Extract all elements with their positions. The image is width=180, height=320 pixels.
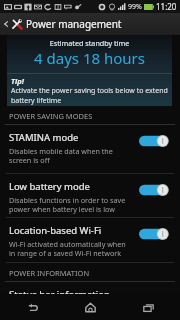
staticText: STAMINA mode: [9, 131, 79, 144]
staticText: Status bar information: [9, 288, 110, 301]
other: Navigate up: [2, 20, 10, 28]
staticText: Low battery mode: [9, 180, 90, 193]
button[interactable]: Toggle on: [139, 135, 169, 147]
staticText: Disables mobile data when the screen is …: [9, 146, 113, 165]
button[interactable]: Navigate up: [0, 13, 180, 35]
staticText: Wi-Fi activated automatically when in ra…: [9, 239, 126, 258]
button[interactable]: Location-based Wi-Fi: [0, 218, 180, 263]
button[interactable]: Toggle on: [139, 228, 169, 240]
staticText: Estimated standby time: [7, 38, 172, 48]
staticText: Power management: [26, 17, 122, 31]
button[interactable]: Toggle on: [139, 184, 169, 196]
button[interactable]: Back: [6, 294, 58, 320]
button[interactable]: STAMINA mode: [0, 125, 180, 174]
staticText: Activate the power saving tools below to…: [11, 86, 168, 96]
staticText: POWER SAVING MODES: [9, 111, 93, 121]
staticText: Tip!: [11, 76, 24, 86]
staticText: Location-based Wi-Fi: [9, 224, 102, 237]
staticText: 99%: [128, 2, 142, 12]
staticText: Disables functions in order to save powe…: [9, 195, 126, 214]
staticText: battery lifetime: [11, 96, 62, 106]
staticText: 4 days 18 hours: [7, 48, 172, 68]
staticText: 11:20: [156, 1, 177, 12]
button[interactable]: Recent apps: [122, 294, 174, 320]
button[interactable]: Home: [64, 294, 116, 320]
button[interactable]: Status bar information: [0, 282, 180, 310]
button[interactable]: Low battery mode: [0, 174, 180, 218]
staticText: POWER INFORMATION: [9, 268, 90, 278]
